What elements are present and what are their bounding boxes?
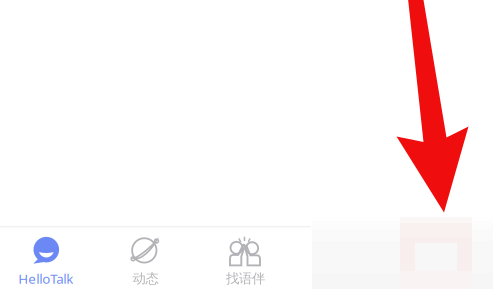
button[interactable]: 找语伴 — [200, 235, 291, 287]
staticText: HelloTalk — [18, 270, 73, 287]
button[interactable]: HelloTalk — [0, 235, 92, 287]
button[interactable]: 动态 — [92, 235, 200, 287]
staticText: 找语伴 — [226, 270, 265, 287]
staticText: 动态 — [133, 270, 159, 287]
